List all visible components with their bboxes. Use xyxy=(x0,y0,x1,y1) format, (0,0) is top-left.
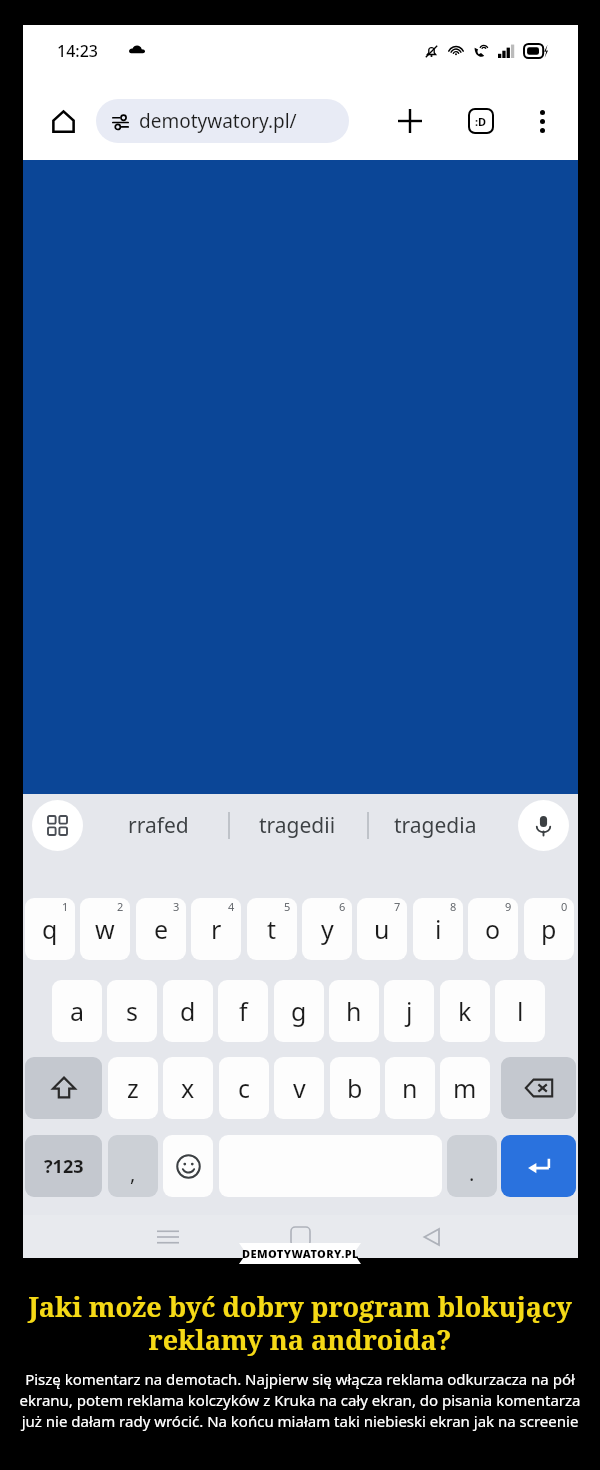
button[interactable]: Enter xyxy=(501,1135,576,1197)
staticText: 6 xyxy=(339,899,346,914)
staticText: x xyxy=(181,1071,195,1105)
staticText: rrafed xyxy=(128,811,189,840)
staticText: u xyxy=(374,912,390,946)
staticText: . xyxy=(469,1160,475,1187)
button[interactable]: , xyxy=(108,1135,158,1197)
staticText: f xyxy=(239,994,248,1028)
button[interactable]: f xyxy=(218,980,268,1042)
staticText: r xyxy=(211,912,222,946)
staticText: 7 xyxy=(394,899,401,914)
button[interactable]: g xyxy=(274,980,324,1042)
button[interactable]: More options xyxy=(518,97,566,145)
button[interactable]: Voice input xyxy=(518,800,569,851)
staticText: demotywatory.pl/ xyxy=(139,108,297,134)
button[interactable]: Tabs xyxy=(457,97,505,145)
button[interactable]: tragedii xyxy=(235,794,359,856)
staticText: d xyxy=(180,994,196,1028)
button[interactable]: ?123 xyxy=(25,1135,102,1197)
button[interactable]: m xyxy=(440,1057,490,1119)
button[interactable]: Back xyxy=(409,1215,455,1258)
staticText: c xyxy=(238,1071,251,1105)
staticText: p xyxy=(541,912,557,946)
staticText: DEMOTYWATORY.PL xyxy=(242,1246,359,1261)
staticText: h xyxy=(346,994,362,1028)
staticText: tragedii xyxy=(259,811,336,840)
button[interactable]: y xyxy=(302,898,352,960)
staticText: o xyxy=(485,912,501,946)
button[interactable]: s xyxy=(107,980,157,1042)
staticText: y xyxy=(321,912,334,946)
staticText: 1 xyxy=(62,899,69,914)
button[interactable]: Keyboard modes xyxy=(32,800,83,851)
staticText: j xyxy=(406,994,413,1028)
button[interactable]: Menu xyxy=(145,1215,191,1258)
button[interactable]: Backspace xyxy=(501,1057,576,1119)
staticText: m xyxy=(453,1071,477,1105)
button[interactable]: z xyxy=(108,1057,158,1119)
button[interactable]: r xyxy=(191,898,241,960)
button[interactable]: b xyxy=(330,1057,380,1119)
button[interactable]: p xyxy=(524,898,574,960)
button[interactable]: o xyxy=(468,898,518,960)
staticText: 9 xyxy=(505,899,512,914)
button[interactable]: tragedia xyxy=(373,794,497,856)
staticText: z xyxy=(127,1071,139,1105)
button[interactable]: rrafed xyxy=(96,794,220,856)
button[interactable]: h xyxy=(329,980,379,1042)
staticText: 8 xyxy=(450,899,457,914)
staticText: ?123 xyxy=(44,1154,84,1179)
button[interactable]: d xyxy=(163,980,213,1042)
button[interactable]: k xyxy=(440,980,490,1042)
button[interactable]: c xyxy=(219,1057,269,1119)
button[interactable]: demotywatory.pl/ xyxy=(96,99,349,143)
button[interactable]: Home xyxy=(41,99,85,143)
staticText: e xyxy=(154,912,169,946)
staticText: n xyxy=(402,1071,418,1105)
button[interactable]: a xyxy=(52,980,102,1042)
staticText: q xyxy=(42,912,58,946)
button[interactable]: n xyxy=(385,1057,435,1119)
button[interactable]: j xyxy=(384,980,434,1042)
staticText: 0 xyxy=(561,899,568,914)
staticText: k xyxy=(458,994,472,1028)
staticText: s xyxy=(126,994,138,1028)
staticText: a xyxy=(70,994,85,1028)
button[interactable]: w xyxy=(80,898,130,960)
staticText: 14:23 xyxy=(57,40,98,62)
button[interactable]: . xyxy=(447,1135,497,1197)
button[interactable]: Shift xyxy=(25,1057,102,1119)
staticText: 3 xyxy=(173,899,180,914)
button[interactable]: New tab xyxy=(386,97,434,145)
button[interactable]: Home xyxy=(277,1215,323,1258)
button[interactable]: t xyxy=(247,898,297,960)
staticText: Jaki może być dobry program blokujący re… xyxy=(14,1288,586,1358)
staticText: Piszę komentarz na demotach. Najpierw si… xyxy=(14,1369,586,1432)
button[interactable]: l xyxy=(495,980,545,1042)
button[interactable]: i xyxy=(413,898,463,960)
staticText: t xyxy=(267,912,277,946)
staticText: l xyxy=(517,994,524,1028)
button[interactable]: Emoji xyxy=(163,1135,213,1197)
button[interactable]: e xyxy=(136,898,186,960)
button[interactable]: u xyxy=(357,898,407,960)
staticText: , xyxy=(130,1160,136,1187)
staticText: w xyxy=(95,912,115,946)
staticText: tragedia xyxy=(394,811,477,840)
staticText: 4 xyxy=(228,899,235,914)
button[interactable]: v xyxy=(274,1057,324,1119)
staticText: 2 xyxy=(117,899,124,914)
staticText: b xyxy=(347,1071,363,1105)
staticText: i xyxy=(435,912,442,946)
staticText: :D xyxy=(475,114,487,129)
staticText: v xyxy=(293,1071,306,1105)
button[interactable]: q xyxy=(25,898,75,960)
button[interactable]: x xyxy=(163,1057,213,1119)
staticText: 5 xyxy=(284,899,291,914)
staticText: g xyxy=(291,994,307,1028)
